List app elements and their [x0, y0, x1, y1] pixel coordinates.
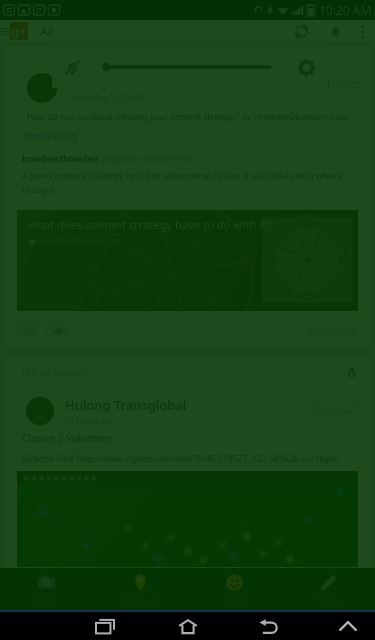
- button[interactable]: Notification settings: [284, 46, 328, 88]
- button[interactable]: Refresh: [283, 20, 319, 42]
- button[interactable]: Open navigation drawer: [0, 20, 10, 42]
- staticText: A good content strategy isn't just about…: [22, 169, 353, 196]
- button[interactable]: Home: [164, 612, 212, 640]
- staticText: 10:20 AM: [319, 2, 372, 18]
- button[interactable]: Photo: [0, 568, 93, 610]
- button[interactable]: Notifications: [319, 20, 351, 42]
- staticText: g+: [11, 22, 27, 40]
- button[interactable]: All: [40, 21, 54, 41]
- button[interactable]: Mute notifications: [52, 46, 92, 88]
- staticText: Cluster 3 Volunteer: [22, 431, 112, 445]
- staticText: Friends: [327, 77, 362, 91]
- staticText: bowden2bowden: [22, 152, 101, 164]
- button[interactable]: Check-in: [93, 568, 187, 610]
- staticText: Director Park http://www.ingress.com/int…: [22, 453, 337, 465]
- button[interactable]: Mood: [187, 568, 281, 610]
- button[interactable]: Hide navigation bar: [324, 612, 372, 640]
- staticText: what does content strategy have to do wi…: [28, 217, 272, 232]
- staticText: How do you go about creating your conten…: [27, 111, 348, 123]
- button[interactable]: Recent apps: [81, 612, 129, 640]
- button[interactable]: Back: [244, 612, 292, 640]
- staticText: All: [40, 23, 54, 39]
- button[interactable]: Google Plus home: [10, 22, 28, 40]
- staticText: #marketing: [22, 129, 78, 143]
- staticText: Hulong Transglobal: [65, 396, 187, 414]
- staticText: bowden2bowden.com: [39, 235, 123, 246]
